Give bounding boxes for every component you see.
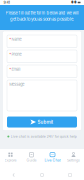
staticText: Live Chat — [44, 158, 60, 162]
staticText: Message — [9, 82, 24, 87]
staticText: Explore — [4, 158, 16, 162]
staticText: Phone — [12, 52, 22, 57]
button[interactable]: Guide — [21, 149, 42, 163]
staticText: Please fill out the form below and we wi… — [5, 11, 78, 16]
button[interactable]: Home — [28, 173, 56, 177]
staticText: ●● — [71, 1, 77, 4]
staticText: Submit — [38, 119, 54, 125]
button[interactable]: Recent apps — [56, 173, 84, 176]
staticText: * — [9, 52, 11, 57]
button[interactable]: Settings — [63, 149, 84, 163]
staticText: Name — [12, 37, 22, 42]
button[interactable]: Submit — [7, 116, 77, 127]
staticText: Guide — [26, 158, 36, 162]
button[interactable]: Live Chat — [42, 149, 63, 163]
staticText: Settings — [67, 158, 80, 162]
staticText: * — [9, 67, 11, 72]
staticText: 9:41 — [3, 0, 9, 5]
button[interactable]: Back — [0, 173, 28, 177]
staticText: Email — [12, 67, 21, 72]
button[interactable]: Explore — [0, 149, 21, 163]
staticText: * — [9, 37, 11, 42]
staticText: Live chat is available 24/7 for quick he… — [11, 134, 77, 138]
staticText: get back to you as soon as possible. — [10, 17, 74, 22]
